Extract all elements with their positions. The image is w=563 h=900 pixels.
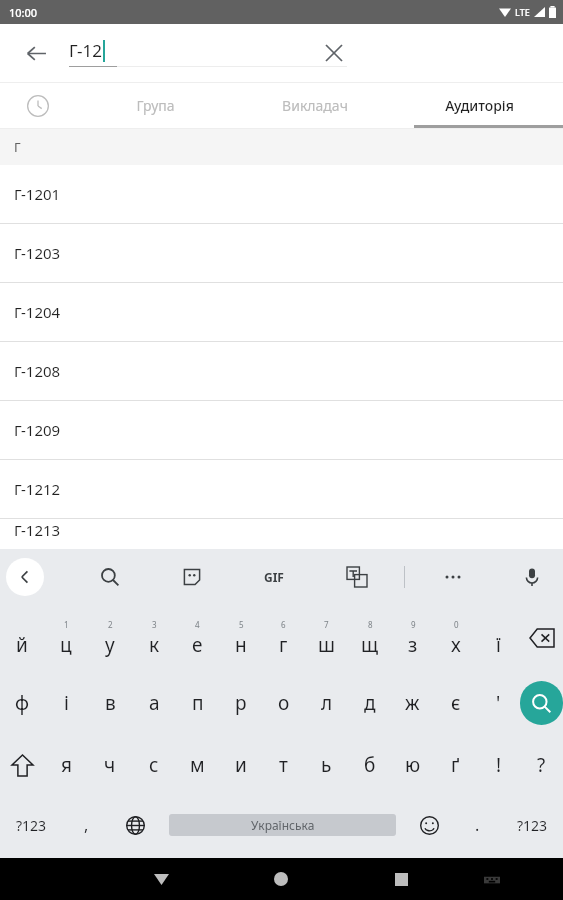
button[interactable]: 7 [305, 604, 348, 672]
staticText: LTE [515, 6, 530, 18]
button[interactable]: б [348, 734, 391, 796]
button[interactable]: Г-1213 [0, 519, 563, 541]
button[interactable]: т [262, 734, 305, 796]
button[interactable]: с [132, 734, 176, 796]
button[interactable]: Г-1212 [0, 460, 563, 519]
button[interactable]: в [88, 672, 132, 734]
button[interactable]: Clear search [316, 35, 352, 71]
staticText: ц [60, 632, 72, 658]
button[interactable]: Українська [169, 814, 396, 836]
button[interactable]: ф [0, 672, 44, 734]
staticText: є [451, 690, 461, 716]
staticText: 3 [152, 619, 157, 630]
staticText: ?123 [517, 816, 548, 835]
staticText: е [192, 632, 203, 658]
button[interactable]: ь [305, 734, 348, 796]
button[interactable]: 1 [44, 604, 88, 672]
button[interactable]: ! [477, 734, 520, 796]
button[interactable]: є [434, 672, 477, 734]
button[interactable]: ч [88, 734, 132, 796]
staticText: ж [405, 690, 420, 716]
button[interactable]: Г-1201 [0, 165, 563, 224]
button[interactable]: 4 [176, 604, 219, 672]
staticText: Група [136, 96, 175, 115]
button[interactable]: 5 [219, 604, 262, 672]
staticText: Г-1209 [14, 420, 61, 440]
button[interactable]: я [44, 734, 88, 796]
staticText: ю [405, 752, 421, 778]
button[interactable]: 2 [88, 604, 132, 672]
button[interactable]: Search [92, 559, 128, 595]
button[interactable]: Г-1208 [0, 342, 563, 401]
button[interactable]: и [219, 734, 262, 796]
button[interactable]: 3 [132, 604, 176, 672]
staticText: т [279, 752, 288, 778]
staticText: , [84, 814, 89, 836]
button[interactable]: о [262, 672, 305, 734]
button[interactable]: , [62, 796, 110, 854]
button[interactable]: Back [18, 35, 54, 71]
button[interactable]: Аудиторія [395, 83, 563, 128]
button[interactable]: ї [477, 604, 520, 672]
staticText: щ [361, 632, 379, 658]
staticText: я [61, 752, 72, 778]
button[interactable]: ?123 [501, 796, 563, 854]
button[interactable]: Collapse toolbar [6, 558, 44, 596]
staticText: й [16, 632, 28, 658]
button[interactable]: 9 [391, 604, 434, 672]
staticText: н [235, 632, 247, 658]
button[interactable]: л [305, 672, 348, 734]
staticText: ' [496, 690, 501, 716]
button[interactable]: Викладач [235, 83, 395, 128]
button[interactable]: Група [75, 83, 235, 128]
button[interactable]: ю [391, 734, 434, 796]
button[interactable]: д [348, 672, 391, 734]
button[interactable]: Backspace [520, 604, 563, 672]
staticText: Українська [251, 817, 315, 833]
button[interactable]: а [132, 672, 176, 734]
button[interactable]: Search [520, 681, 563, 725]
button[interactable]: Recent searches [0, 83, 75, 128]
button[interactable]: ? [520, 734, 563, 796]
button[interactable]: GIF [256, 559, 292, 595]
staticText: ! [496, 752, 502, 778]
button[interactable]: п [176, 672, 219, 734]
button[interactable]: Back [141, 859, 181, 899]
staticText: Г-1208 [14, 361, 61, 381]
staticText: 10:00 [9, 5, 38, 20]
button[interactable]: Recents [381, 859, 421, 899]
button[interactable]: 6 [262, 604, 305, 672]
button[interactable]: Switch keyboard [474, 861, 510, 897]
staticText: Г-12 [69, 39, 102, 62]
staticText: . [475, 814, 480, 836]
staticText: Г-1204 [14, 302, 61, 322]
button[interactable]: Г-1209 [0, 401, 563, 460]
button[interactable]: ж [391, 672, 434, 734]
button[interactable]: і [44, 672, 88, 734]
staticText: б [364, 752, 376, 778]
button[interactable]: ґ [434, 734, 477, 796]
staticText: ґ [451, 752, 460, 778]
button[interactable]: . [453, 796, 501, 854]
button[interactable]: 8 [348, 604, 391, 672]
button[interactable]: р [219, 672, 262, 734]
staticText: Г-1213 [14, 520, 61, 540]
button[interactable]: 0 [434, 604, 477, 672]
staticText: 5 [239, 619, 244, 630]
button[interactable]: й [0, 604, 44, 672]
button[interactable]: Г-1204 [0, 283, 563, 342]
button[interactable]: ?123 [0, 796, 62, 854]
button[interactable]: ' [477, 672, 520, 734]
button[interactable]: Emoji [405, 796, 453, 854]
button[interactable]: Shift [0, 734, 44, 796]
button[interactable]: Г-1203 [0, 224, 563, 283]
button[interactable]: Voice input [514, 559, 550, 595]
button[interactable]: Translate [339, 559, 375, 595]
staticText: Г [14, 138, 21, 156]
button[interactable]: More options [435, 559, 471, 595]
button[interactable]: Stickers [174, 559, 210, 595]
button[interactable]: Home [261, 859, 301, 899]
staticText: 9 [411, 619, 416, 630]
button[interactable]: Change language [110, 796, 160, 854]
button[interactable]: м [176, 734, 219, 796]
